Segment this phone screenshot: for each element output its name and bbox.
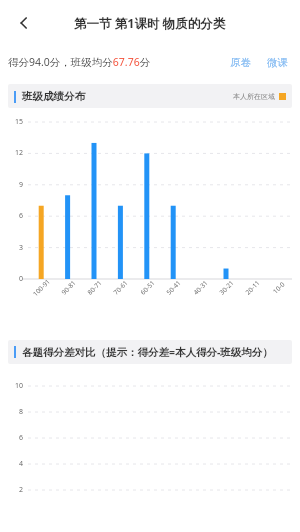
staticText: 3 — [19, 243, 24, 253]
staticText: 40-31 — [191, 278, 210, 297]
staticText: 20-11 — [243, 278, 262, 297]
button[interactable]: 微课 — [263, 53, 292, 72]
staticText: 本人所在区域 — [233, 92, 275, 101]
staticText: 得分94.0分，班级均分67.76分 — [8, 55, 151, 69]
staticText: 原卷 — [230, 56, 251, 69]
staticText: 80-71 — [85, 278, 104, 297]
staticText: 班级成绩分布 — [22, 90, 85, 103]
staticText: 10 — [15, 381, 24, 391]
staticText: 第一节 第1课时 物质的分类 — [74, 15, 226, 32]
staticText: 8 — [19, 407, 24, 417]
staticText: 各题得分差对比（提示：得分差=本人得分-班级均分） — [22, 345, 273, 359]
staticText: 12 — [15, 148, 24, 158]
staticText: 15 — [15, 117, 24, 127]
staticText: 60-51 — [138, 278, 157, 297]
staticText: 100-91 — [31, 277, 52, 298]
staticText: 9 — [19, 180, 24, 190]
staticText: 4 — [19, 459, 24, 469]
staticText: 90-81 — [59, 278, 78, 297]
staticText: 2 — [19, 485, 24, 495]
button[interactable]: 原卷 — [226, 53, 255, 72]
staticText: 6 — [19, 211, 24, 221]
staticText: 10-0 — [271, 279, 287, 296]
staticText: 微课 — [267, 56, 288, 69]
staticText: 70-61 — [111, 278, 130, 297]
staticText: 50-41 — [164, 278, 183, 297]
staticText: 0 — [19, 274, 24, 284]
staticText: 30-21 — [217, 278, 236, 297]
button[interactable]: Back — [6, 5, 42, 41]
staticText: 6 — [19, 433, 24, 443]
